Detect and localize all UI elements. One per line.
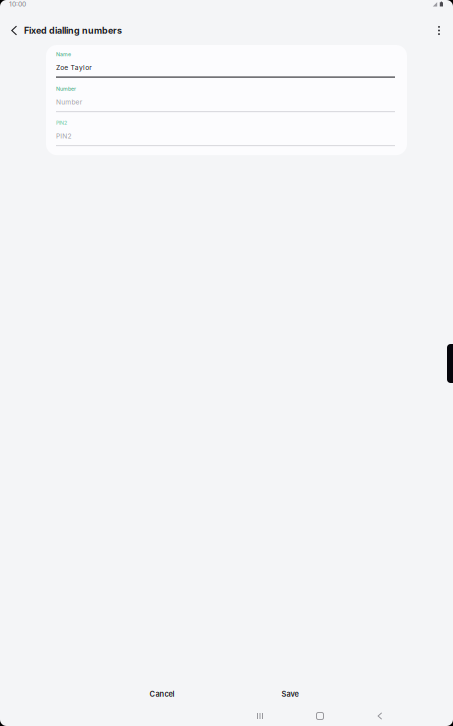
staticText: Fixed dialling numbers [24,25,122,36]
button[interactable]: Name [56,45,395,78]
staticText: Zoe Taylor [56,63,92,72]
button[interactable]: Back [350,708,410,724]
staticText: PIN2 [56,120,67,126]
button[interactable]: PIN2 [56,112,395,146]
staticText: Save [281,689,298,698]
staticText: Name [56,51,71,57]
staticText: Number [56,98,83,106]
button[interactable]: Home [290,708,350,724]
button[interactable]: Cancel [98,684,226,704]
staticText: Number [56,86,76,92]
button[interactable]: Save [226,684,354,704]
button[interactable]: Back [0,17,24,43]
button[interactable]: Number [56,78,395,112]
staticText: 10:00 [9,0,26,8]
button[interactable]: Recent apps [230,708,290,724]
staticText: PIN2 [56,132,71,140]
button[interactable]: More options [425,17,453,43]
staticText: Cancel [149,689,174,698]
